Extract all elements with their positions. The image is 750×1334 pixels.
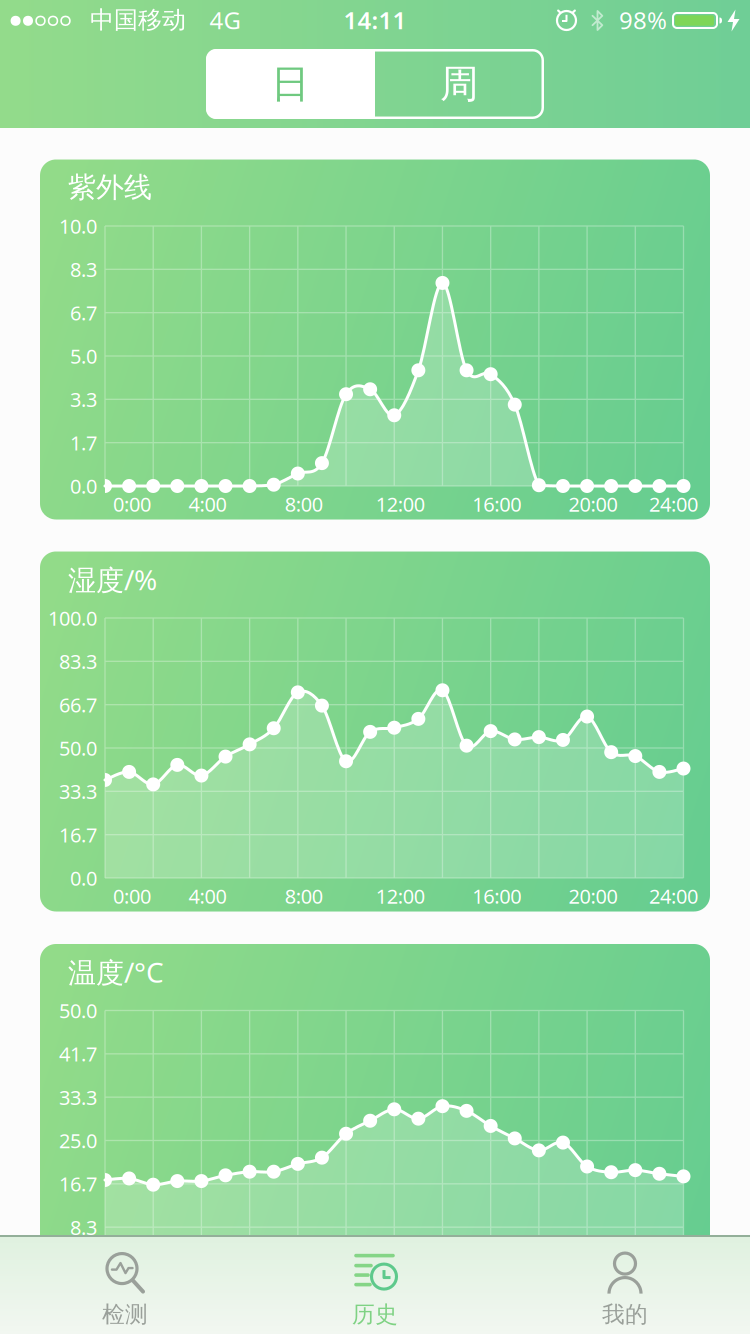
staticText: 周 [440,60,479,108]
staticText: 0:00 [113,1275,151,1302]
staticText: 12:00 [376,883,425,909]
staticText: 8:00 [285,491,323,517]
staticText: 16.7 [59,1171,97,1197]
staticText: 41.7 [59,1041,97,1067]
staticText: 12:00 [376,491,425,517]
button[interactable]: 我的 [535,1243,715,1334]
staticText: 0.0 [70,473,97,499]
button[interactable]: 日 [206,49,375,119]
staticText: 10.0 [59,213,97,239]
staticText: 33.3 [59,1084,97,1110]
staticText: 83.3 [59,648,97,675]
button[interactable]: 历史 [285,1243,465,1334]
staticText: 50.0 [59,997,97,1024]
staticText: 日 [271,60,310,108]
staticText: 16:00 [472,491,521,517]
staticText: 14:11 [343,4,406,36]
staticText: 6.7 [70,299,97,326]
staticText: 中国移动 [90,5,186,35]
staticText: 紫外线 [68,170,152,205]
staticText: 8:00 [285,883,323,909]
staticText: 66.7 [59,691,97,718]
staticText: 100.0 [48,605,97,631]
staticText: 检测 [102,1301,148,1328]
staticText: 98% [619,4,667,36]
button[interactable]: 周 [375,49,544,119]
staticText: 4:00 [188,491,226,517]
staticText: 0.0 [70,865,97,891]
staticText: 24:00 [649,491,698,517]
staticText: 0:00 [113,491,151,517]
staticText: 16:00 [472,883,521,909]
staticText: 4:00 [188,883,226,909]
staticText: 温度/°C [68,953,164,991]
staticText: 3.3 [70,386,97,413]
staticText: 8.3 [70,1214,97,1240]
button[interactable]: 检测 [35,1243,215,1334]
staticText: 33.3 [59,778,97,805]
staticText: 24:00 [649,883,698,909]
staticText: 我的 [602,1301,648,1328]
staticText: 历史 [352,1301,398,1328]
staticText: 12:00 [376,1275,425,1302]
staticText: 16.7 [59,821,97,848]
staticText: 4G [209,4,240,36]
staticText: 20:00 [569,491,618,517]
staticText: 50.0 [59,735,97,761]
staticText: 湿度/% [68,561,157,598]
staticText: 1.7 [70,429,97,456]
staticText: 20:00 [569,883,618,909]
staticText: 20:00 [569,1275,618,1302]
staticText: 8.3 [70,256,97,283]
staticText: 25.0 [59,1127,97,1154]
staticText: 0:00 [113,883,151,909]
staticText: 5.0 [70,343,97,369]
